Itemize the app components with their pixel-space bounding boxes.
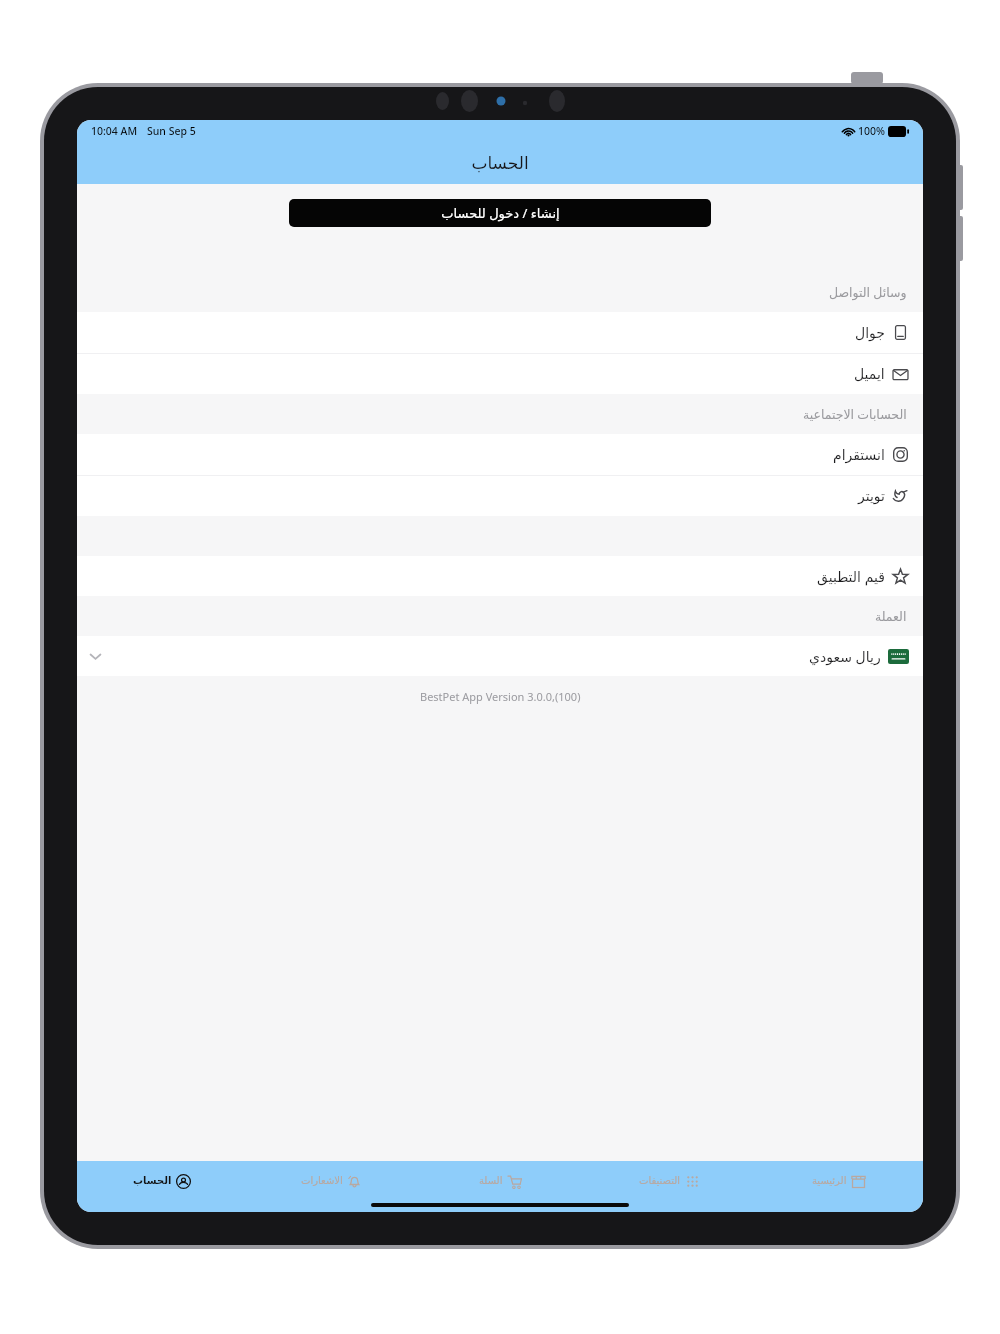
staticText: وسائل التواصل bbox=[829, 284, 907, 301]
button[interactable]: جوال bbox=[77, 312, 923, 354]
staticText: الرئيسية bbox=[812, 1175, 847, 1187]
staticText: 10:04 AM bbox=[91, 124, 138, 138]
staticText: إنشاء / دخول للحساب bbox=[441, 204, 560, 222]
staticText: الاشعارات bbox=[301, 1175, 343, 1187]
button[interactable]: ايميل bbox=[77, 354, 923, 394]
button[interactable]: الاشعارات bbox=[247, 1161, 416, 1201]
staticText: ريال سعودي bbox=[809, 647, 881, 666]
button[interactable]: الرئيسية bbox=[754, 1161, 923, 1201]
button[interactable]: تويتر bbox=[77, 476, 923, 516]
button[interactable]: التصنيفات bbox=[585, 1161, 754, 1201]
button[interactable]: Expand bbox=[77, 636, 923, 676]
button[interactable]: السلة bbox=[416, 1161, 585, 1201]
staticText: انستقرام bbox=[833, 447, 885, 463]
staticText: السلة bbox=[479, 1175, 503, 1187]
staticText: الحسابات الاجتماعية bbox=[803, 406, 907, 423]
other: Expand bbox=[89, 652, 102, 661]
button[interactable]: الحساب bbox=[77, 1161, 247, 1201]
staticText: الحساب bbox=[133, 1175, 172, 1187]
staticText: الحساب bbox=[471, 153, 529, 173]
staticText: التصنيفات bbox=[639, 1175, 681, 1187]
button[interactable]: انستقرام bbox=[77, 434, 923, 476]
staticText: العملة bbox=[875, 609, 907, 624]
staticText: Sun Sep 5 bbox=[147, 124, 196, 138]
staticText: ايميل bbox=[854, 366, 885, 382]
button[interactable]: إنشاء / دخول للحساب bbox=[289, 199, 711, 227]
staticText: جوال bbox=[855, 325, 885, 341]
staticText: BestPet App Version 3.0.0,(100) bbox=[420, 689, 581, 704]
button[interactable]: قيم التطبيق bbox=[77, 556, 923, 596]
staticText: تويتر bbox=[858, 488, 885, 504]
staticText: قيم التطبيق bbox=[817, 567, 885, 586]
staticText: 100% bbox=[858, 124, 885, 138]
